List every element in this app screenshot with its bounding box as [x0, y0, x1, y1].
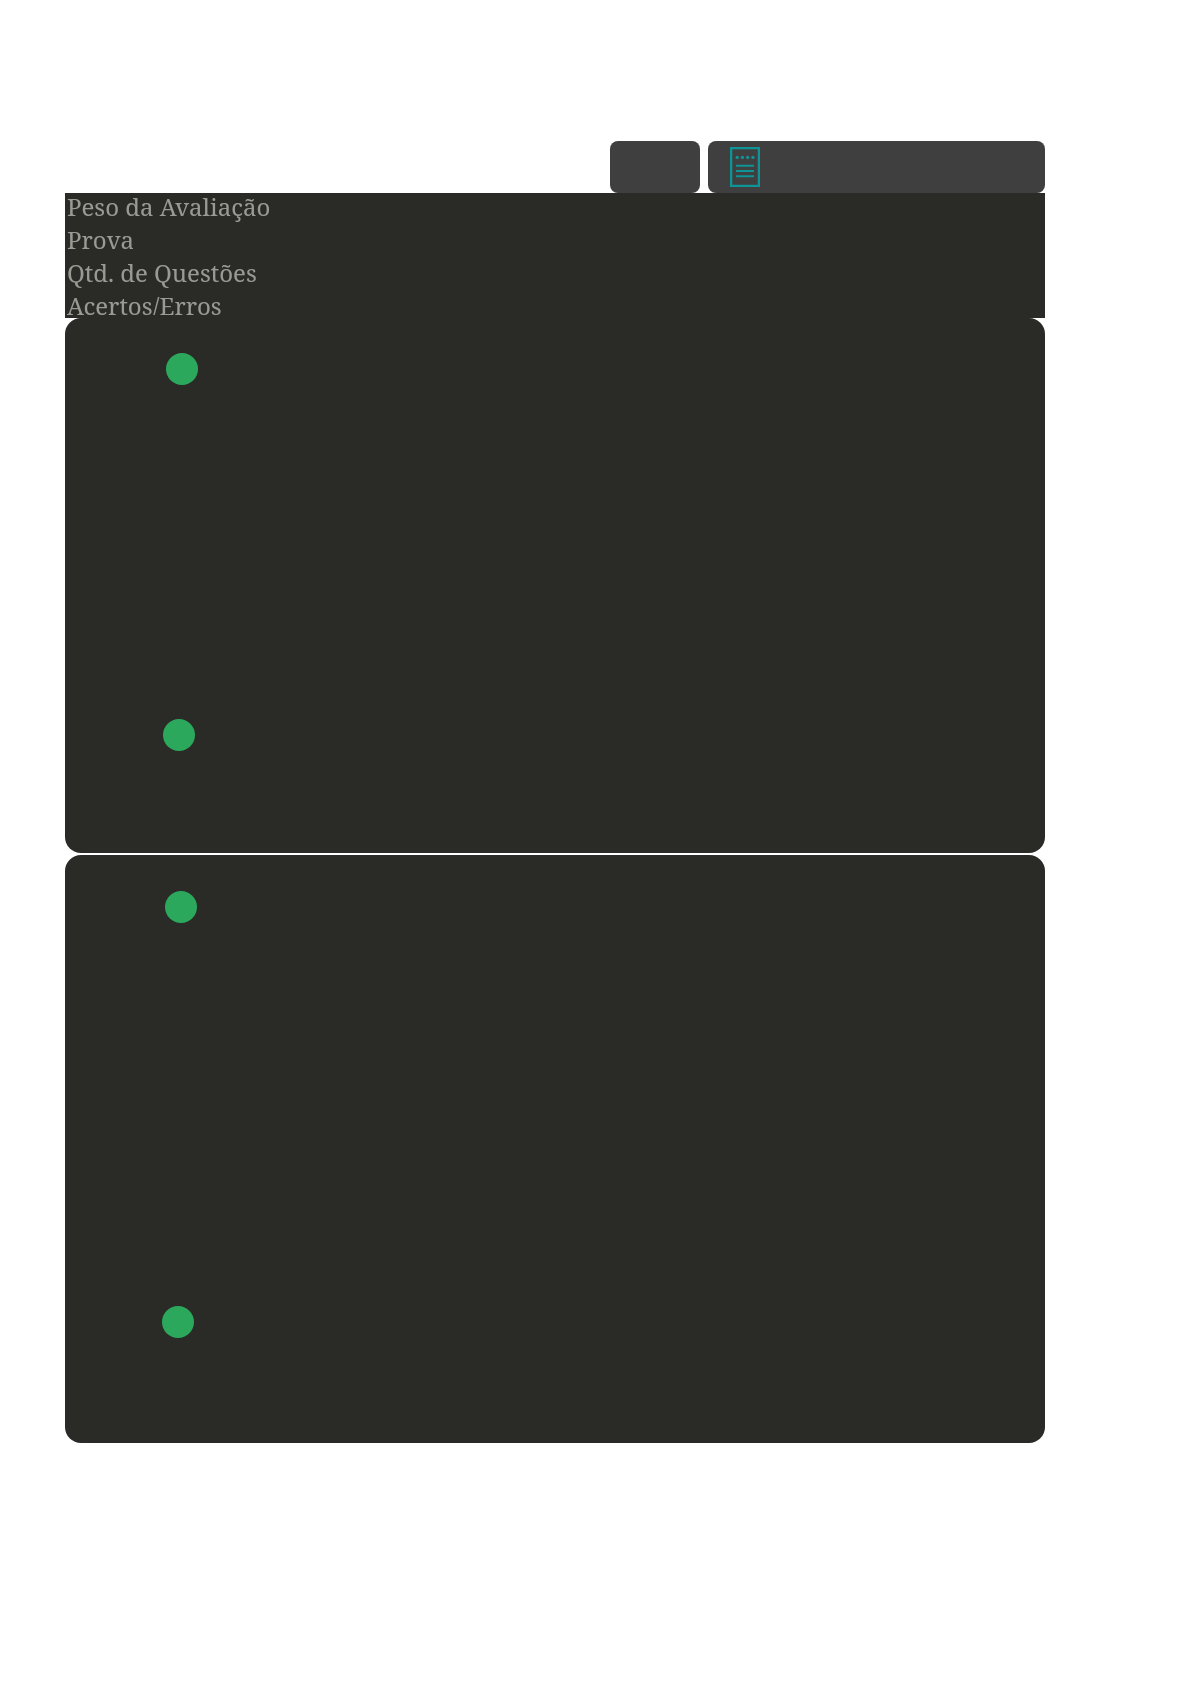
- button[interactable]: Filtro: [610, 141, 700, 193]
- staticText: Peso da Avaliação: [67, 190, 271, 223]
- staticText: Acertos/Erros: [67, 289, 222, 315]
- staticText: Qtd. de Questões: [67, 256, 257, 289]
- button[interactable]: [65, 855, 1045, 1443]
- button[interactable]: [65, 318, 1045, 853]
- button[interactable]: Relatorio de avaliacao: [708, 141, 1045, 193]
- staticText: Prova: [67, 223, 135, 256]
